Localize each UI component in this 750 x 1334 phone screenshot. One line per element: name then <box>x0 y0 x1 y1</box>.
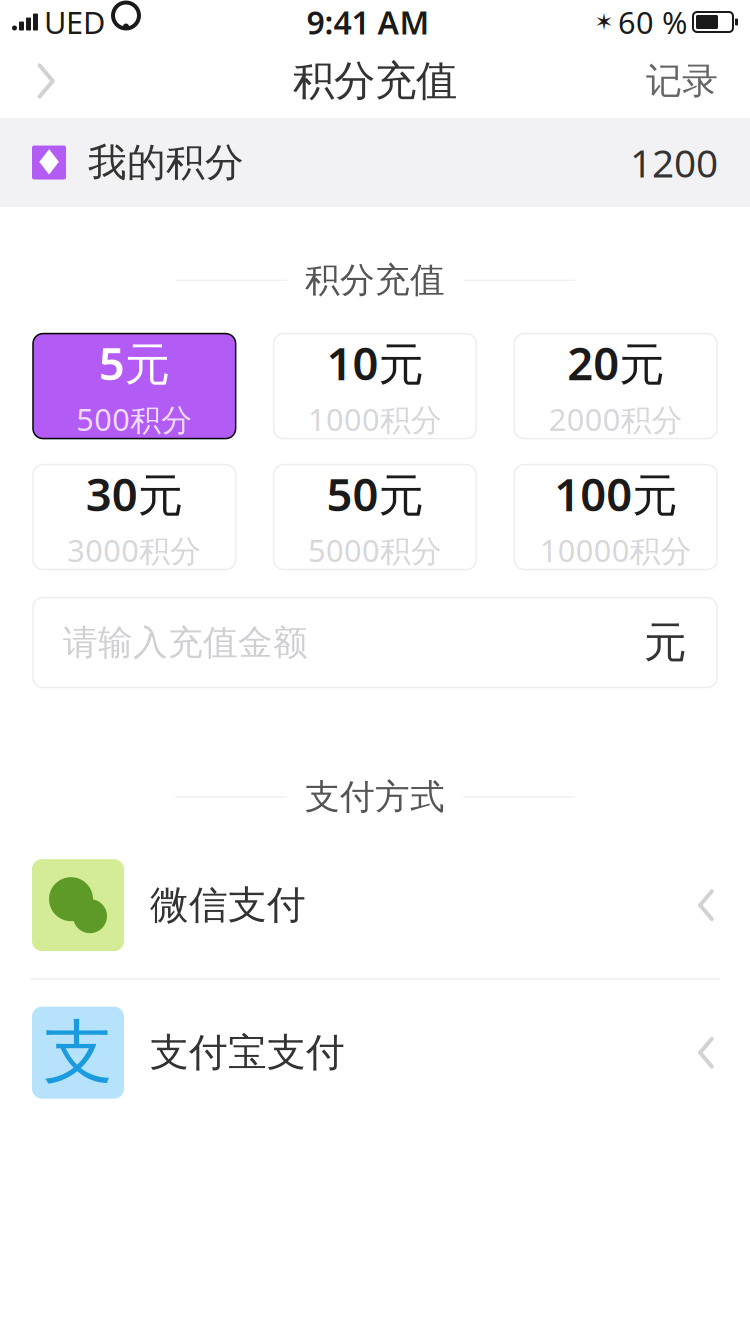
staticText: 1000积分 <box>308 399 442 439</box>
button[interactable]: 50元 <box>274 465 476 570</box>
staticText: 5元 <box>99 333 170 393</box>
staticText: 60 % <box>618 2 687 42</box>
button[interactable]: 30元 <box>33 465 236 570</box>
staticText: 我的积分 <box>88 139 244 186</box>
staticText: 5000积分 <box>308 530 442 570</box>
staticText: 积分充值 <box>305 259 445 302</box>
button[interactable]: Back <box>16 49 76 113</box>
staticText: 100元 <box>554 464 677 524</box>
staticText: 10元 <box>326 333 423 393</box>
staticText: 微信支付 <box>150 881 306 929</box>
button[interactable]: 支 <box>0 980 750 1126</box>
button[interactable]: 5元 <box>33 334 236 439</box>
staticText: ♦ <box>33 143 64 182</box>
staticText: 1200 <box>630 137 718 188</box>
staticText: 支付宝支付 <box>150 1029 345 1076</box>
button[interactable]: 10元 <box>274 334 476 439</box>
staticText: 2000积分 <box>549 399 683 439</box>
staticText: 请输入充值金额 <box>63 621 308 664</box>
staticText: 50元 <box>326 464 423 524</box>
button[interactable]: 100元 <box>514 465 717 570</box>
staticText: 10000积分 <box>540 530 692 570</box>
staticText: ✶ <box>594 9 613 35</box>
button[interactable]: 微信支付 <box>0 832 750 978</box>
staticText: 30元 <box>86 464 183 524</box>
staticText: UED <box>44 2 105 42</box>
staticText: 记录 <box>646 59 718 103</box>
staticText: 20元 <box>567 333 664 393</box>
staticText: 积分充值 <box>293 56 457 106</box>
staticText: 支付方式 <box>305 776 445 818</box>
staticText: 9:41 AM <box>306 1 429 43</box>
staticText: 元 <box>644 616 687 669</box>
staticText: 500积分 <box>76 399 192 439</box>
button[interactable]: 记录 <box>630 49 734 113</box>
staticText: 支 <box>43 1010 112 1095</box>
button[interactable]: 20元 <box>514 334 717 439</box>
staticText: 3000积分 <box>67 530 201 570</box>
